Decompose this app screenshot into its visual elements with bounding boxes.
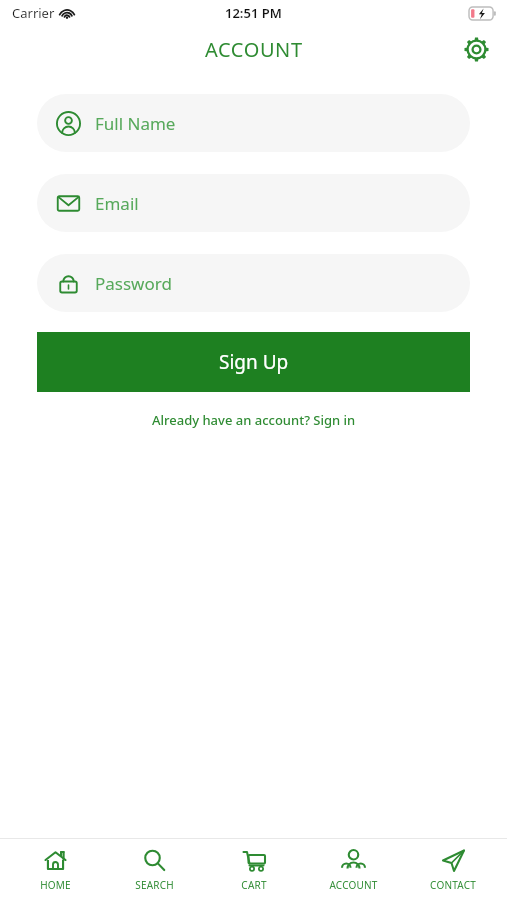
- button[interactable]: HOME: [10, 839, 100, 900]
- button[interactable]: SEARCH: [109, 839, 199, 900]
- staticText: 12:51 PM: [225, 4, 282, 22]
- staticText: SEARCH: [135, 878, 174, 892]
- button[interactable]: CART: [209, 839, 299, 900]
- staticText: CART: [241, 878, 267, 892]
- button[interactable]: Email: [37, 174, 470, 232]
- staticText: ACCOUNT: [205, 36, 303, 63]
- staticText: Password: [95, 272, 172, 295]
- staticText: Email: [95, 192, 139, 215]
- button[interactable]: Already have an account? Sign in: [146, 408, 362, 432]
- staticText: HOME: [40, 878, 71, 892]
- button[interactable]: Full Name: [37, 94, 470, 152]
- staticText: Sign Up: [219, 349, 289, 375]
- button[interactable]: Settings: [458, 31, 494, 67]
- staticText: Full Name: [95, 112, 176, 135]
- button[interactable]: Password: [37, 254, 470, 312]
- button[interactable]: Sign Up: [37, 332, 470, 392]
- button[interactable]: CONTACT: [408, 839, 498, 900]
- staticText: CONTACT: [430, 878, 476, 892]
- button[interactable]: ACCOUNT: [308, 839, 398, 900]
- staticText: ACCOUNT: [329, 878, 378, 892]
- staticText: Carrier: [12, 4, 55, 22]
- staticText: Already have an account? Sign in: [152, 411, 356, 429]
